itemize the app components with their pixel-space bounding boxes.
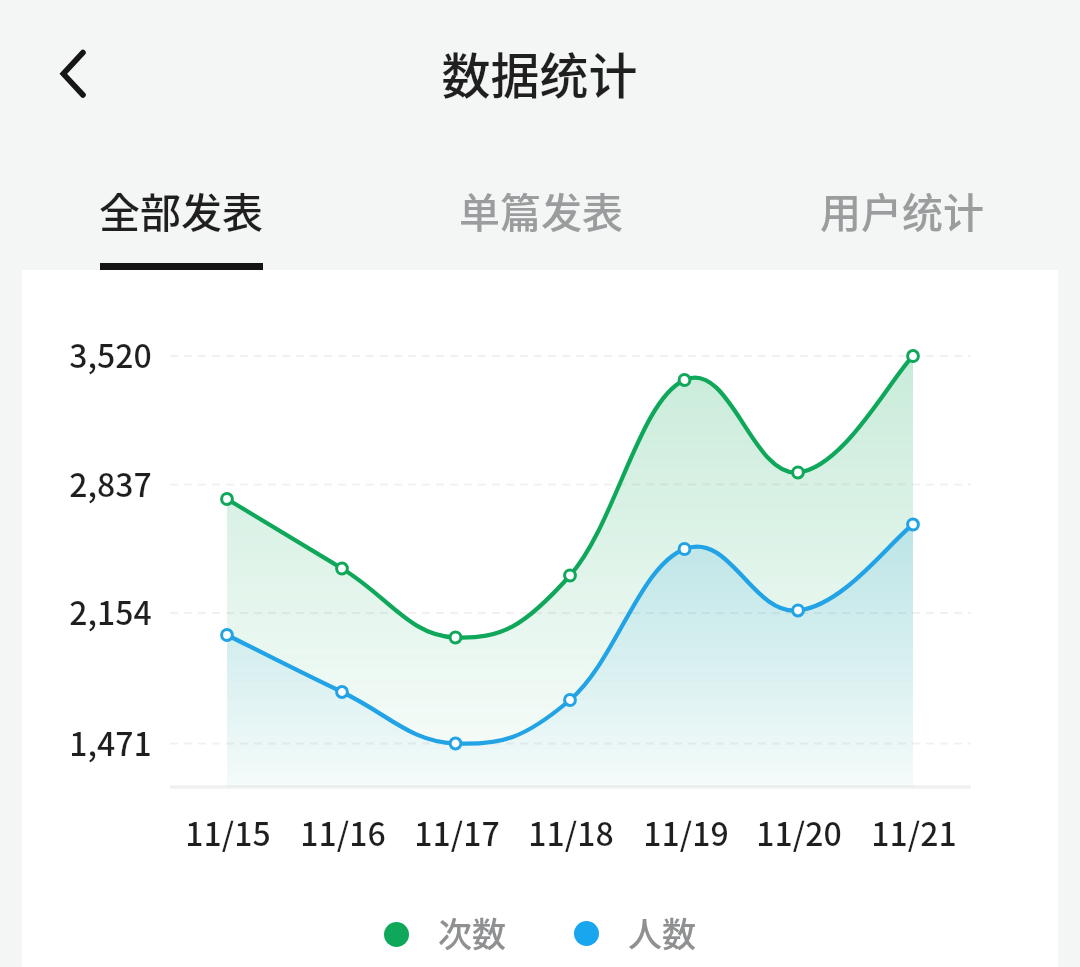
staticText: 人数 [628,908,696,957]
staticText: 2,154 [69,588,152,634]
staticText: 11/16 [300,809,386,855]
staticText: 单篇发表 [459,180,623,239]
staticText: 11/21 [871,809,957,855]
staticText: 11/17 [414,809,500,855]
staticText: 11/20 [756,809,842,855]
staticText: 1,471 [69,719,152,765]
staticText: 用户统计 [820,180,984,239]
button[interactable]: Back [28,23,118,123]
other: Legend colour for 人数 [574,921,599,946]
button[interactable]: 用户统计 [792,160,1012,270]
staticText: 3,520 [69,331,152,377]
staticText: 2,837 [69,460,152,506]
staticText: 11/18 [528,809,614,855]
staticText: 全部发表 [99,180,263,239]
button[interactable]: 全部发表 [71,160,291,270]
staticText: 11/15 [185,809,271,855]
staticText: 数据统计 [441,37,638,108]
other: Legend colour for 次数 [384,922,409,947]
staticText: 11/19 [643,809,729,855]
button[interactable]: 单篇发表 [431,160,651,270]
staticText: 次数 [438,908,506,957]
